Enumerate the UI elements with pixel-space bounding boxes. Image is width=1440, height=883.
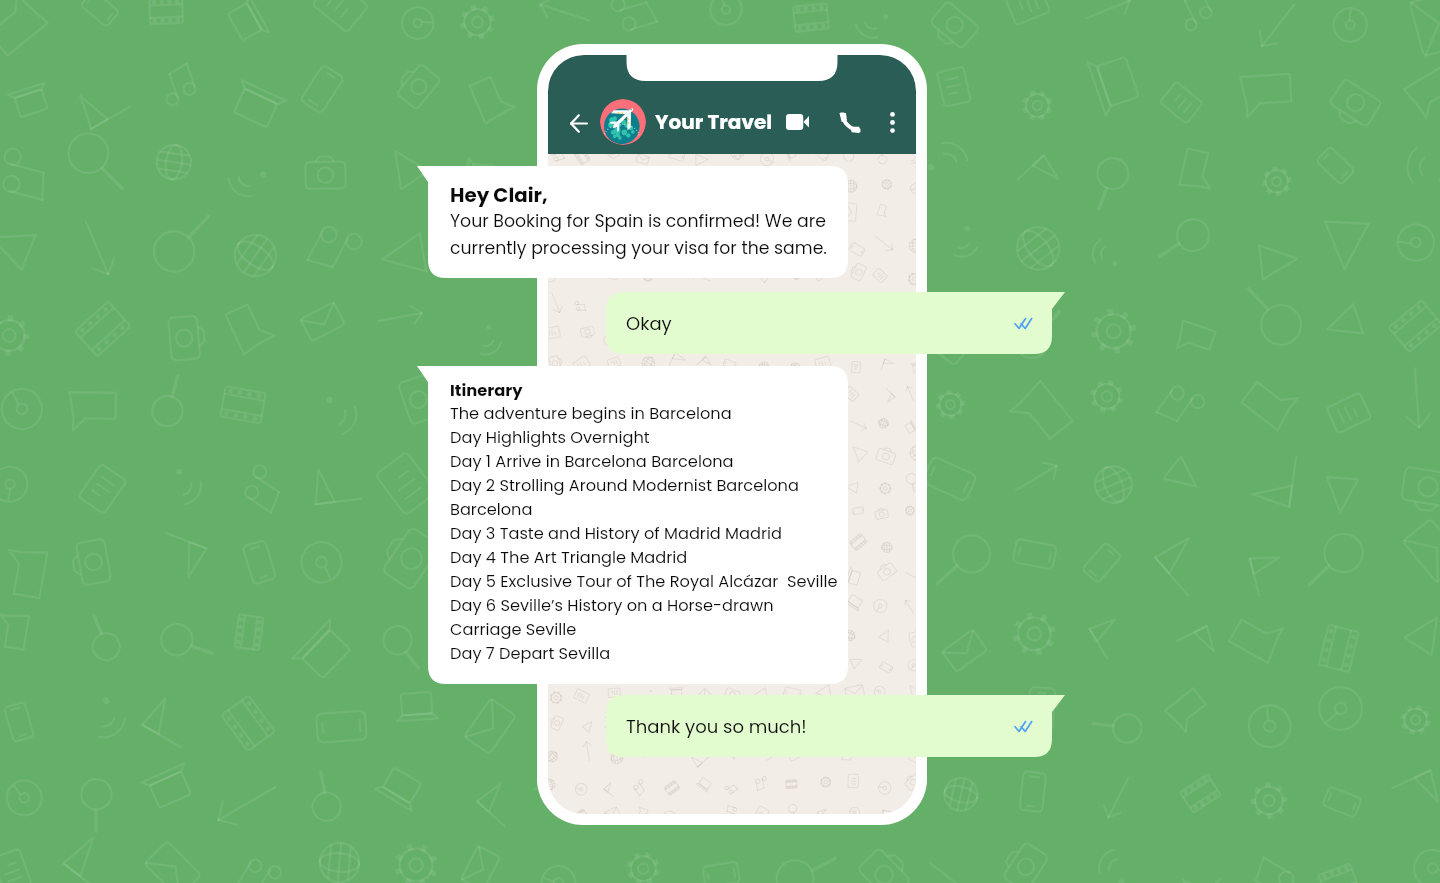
button[interactable]: Okay message: [606, 292, 1065, 354]
button[interactable]: Back: [564, 109, 592, 137]
staticText: Your Travel: [655, 108, 773, 136]
button[interactable]: Thank you message: [606, 695, 1065, 757]
button[interactable]: Your Travel: [651, 103, 775, 141]
button[interactable]: Video call: [783, 108, 811, 136]
staticText: Hey Clair,: [450, 181, 548, 209]
staticText: The adventure begins in Barcelona Day Hi…: [450, 402, 841, 664]
button[interactable]: Your Travel avatar: [600, 99, 646, 145]
button[interactable]: Itinerary: [417, 366, 848, 684]
button[interactable]: More options: [877, 107, 907, 137]
button[interactable]: Hey Clair,: [417, 166, 848, 278]
staticText: Itinerary: [450, 379, 523, 402]
button[interactable]: Voice call: [834, 107, 864, 137]
staticText: Okay: [626, 311, 672, 336]
staticText: Thank you so much!: [626, 714, 807, 739]
staticText: Your Booking for Spain is confirmed! We …: [450, 209, 838, 260]
